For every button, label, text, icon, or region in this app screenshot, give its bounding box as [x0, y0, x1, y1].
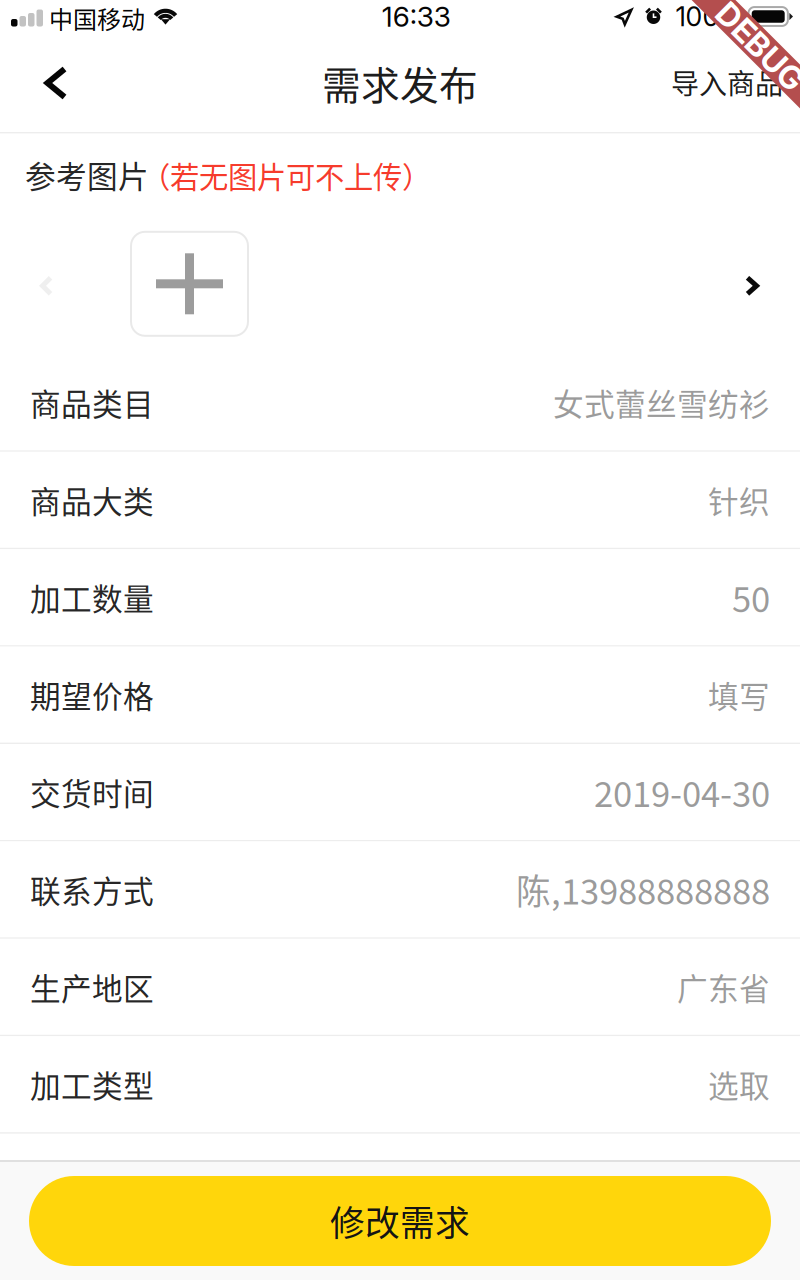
- staticText: 广东省: [677, 965, 770, 1009]
- button[interactable]: Next photo: [728, 260, 776, 312]
- staticText: 期望价格: [30, 672, 154, 717]
- staticText: 2019-04-30: [594, 767, 770, 817]
- button[interactable]: 交货时间: [0, 744, 800, 841]
- staticText: DEBUG: [705, 27, 800, 66]
- button[interactable]: 生产地区: [0, 939, 800, 1036]
- staticText: 中国移动: [49, 1, 145, 35]
- button[interactable]: 导入商品: [661, 49, 793, 115]
- staticText: 生产地区: [30, 965, 154, 1009]
- button[interactable]: 期望价格: [0, 647, 800, 744]
- button[interactable]: 加工类型: [0, 1036, 800, 1134]
- button[interactable]: 联系方式: [0, 841, 800, 939]
- staticText: 16:33: [382, 0, 451, 33]
- staticText: 联系方式: [30, 867, 154, 912]
- button[interactable]: Add photo: [131, 232, 248, 336]
- staticText: 陈,13988888888: [516, 864, 770, 914]
- staticText: 加工类型: [30, 1062, 154, 1106]
- staticText: 商品类目: [30, 380, 154, 425]
- button[interactable]: Back: [24, 50, 88, 116]
- button[interactable]: 商品大类: [0, 452, 800, 549]
- staticText: 需求发布: [322, 55, 478, 111]
- staticText: 女式蕾丝雪纺衫: [553, 380, 770, 425]
- staticText: 100%: [675, 0, 744, 33]
- staticText: 针织: [708, 478, 770, 522]
- button[interactable]: 加工数量: [0, 549, 800, 647]
- staticText: 填写: [708, 672, 770, 717]
- button[interactable]: 商品类目: [0, 354, 800, 452]
- staticText: 选取: [708, 1062, 770, 1106]
- staticText: 修改需求: [330, 1196, 470, 1246]
- staticText: 加工数量: [30, 575, 154, 619]
- staticText: 商品大类: [30, 478, 154, 522]
- button[interactable]: 修改需求: [29, 1176, 771, 1266]
- staticText: 导入商品: [671, 62, 783, 102]
- staticText: 50: [732, 572, 770, 622]
- staticText: 参考图片: [25, 152, 149, 197]
- staticText: （若无图片可不上传）: [141, 154, 431, 196]
- staticText: 交货时间: [30, 770, 154, 814]
